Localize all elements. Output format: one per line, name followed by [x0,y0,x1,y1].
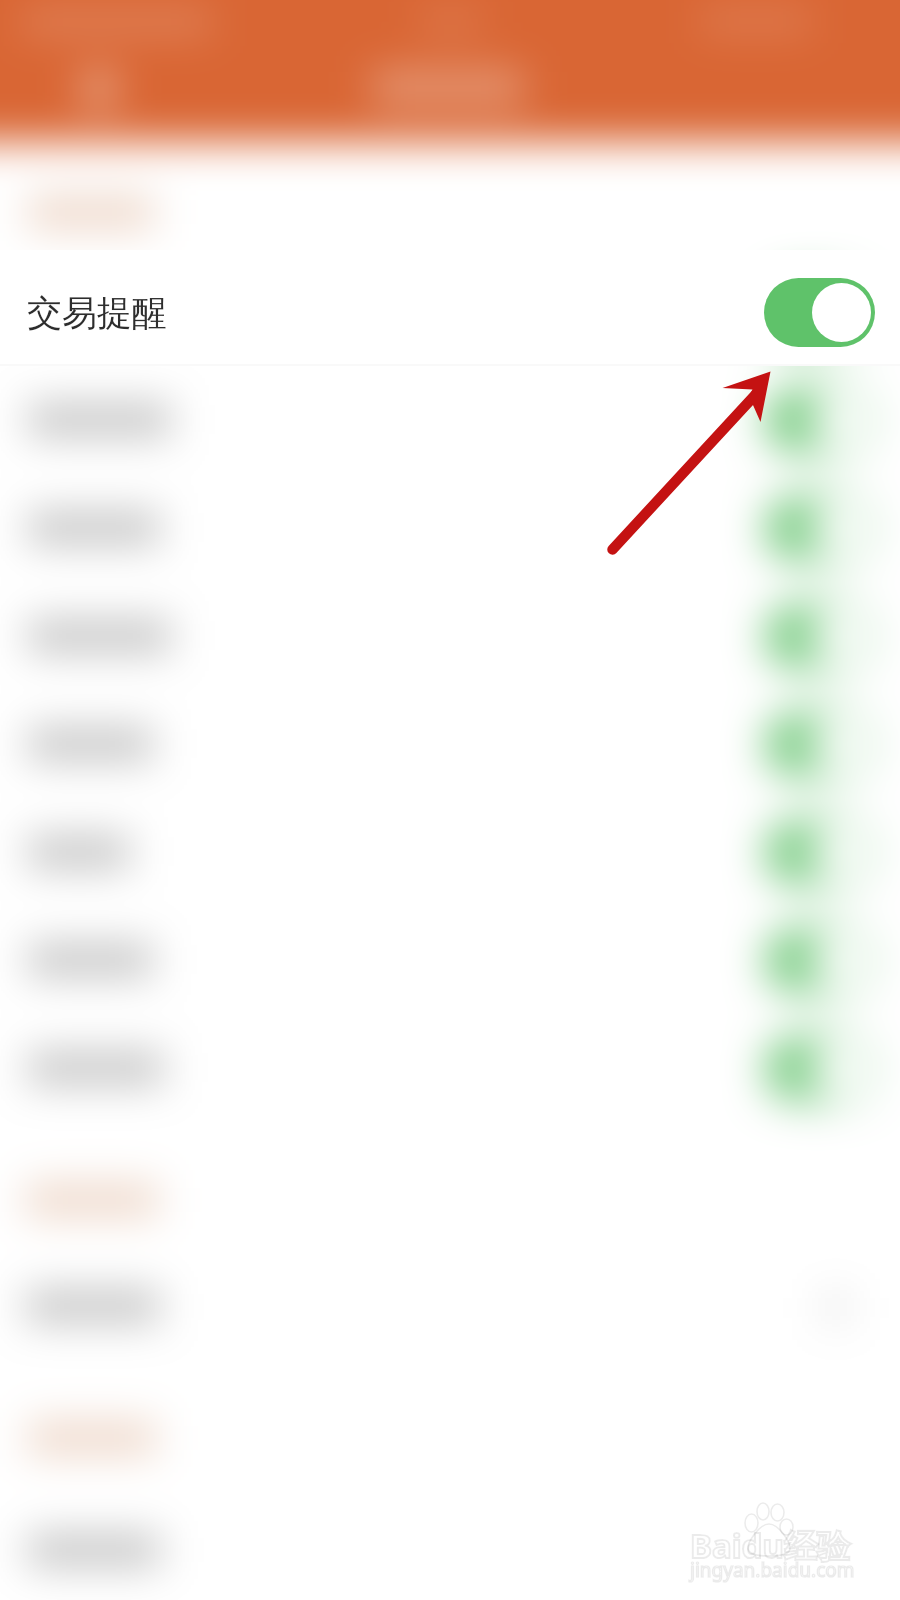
staticText: Baidu经验 [690,1523,850,1568]
other: Annotation arrow [0,0,900,1600]
button[interactable]: 交易提醒 [0,250,900,366]
staticText: 交易提醒 [27,291,167,335]
staticText: jingyan.baidu.com [690,1557,855,1583]
button[interactable]: Transaction reminder switch, on [764,278,875,347]
